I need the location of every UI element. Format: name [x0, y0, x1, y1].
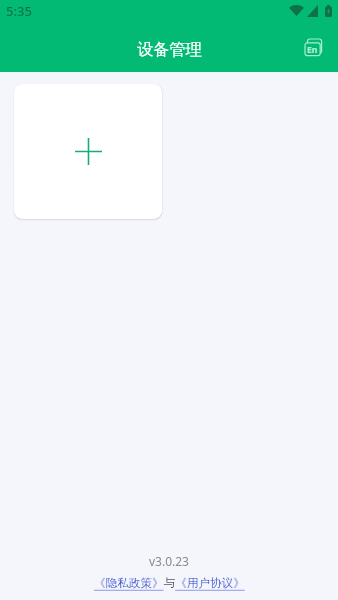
staticText: 设备管理: [137, 39, 202, 59]
button[interactable]: Add device: [14, 84, 162, 219]
staticText: 5:35: [6, 2, 32, 20]
button[interactable]: 《隐私政策》与《用户协议》: [94, 576, 245, 591]
staticText: En: [307, 44, 318, 56]
button[interactable]: Switch language: [297, 31, 329, 63]
staticText: v3.0.23: [149, 553, 189, 569]
